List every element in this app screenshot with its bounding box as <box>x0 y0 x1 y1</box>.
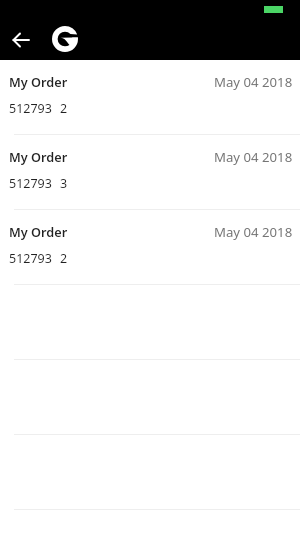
staticText: 2 <box>60 250 68 267</box>
button[interactable]: Back <box>8 25 38 55</box>
button[interactable]: Grab logo <box>52 26 78 52</box>
button[interactable]: My Order <box>0 60 300 135</box>
staticText: 2 <box>60 100 68 117</box>
staticText: 512793 <box>9 100 52 117</box>
button[interactable]: My Order <box>0 135 300 210</box>
staticText: 512793 <box>9 250 52 267</box>
staticText: My Order <box>9 148 68 165</box>
staticText: My Order <box>9 223 68 240</box>
staticText: May 04 2018 <box>214 73 293 91</box>
button[interactable]: My Order <box>0 210 300 285</box>
staticText: May 04 2018 <box>214 223 293 241</box>
staticText: 512793 <box>9 175 52 192</box>
staticText: May 04 2018 <box>214 148 293 166</box>
staticText: 3 <box>60 175 68 192</box>
staticText: My Order <box>9 73 68 90</box>
